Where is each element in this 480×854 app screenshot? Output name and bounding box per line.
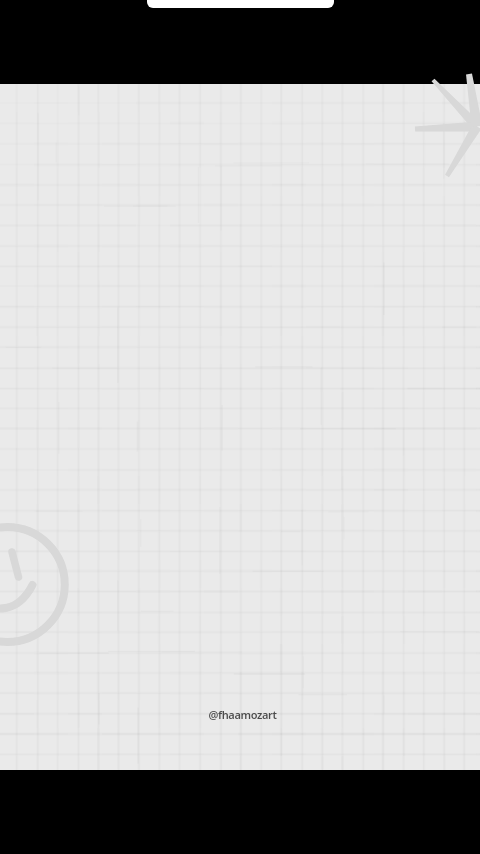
button[interactable]: @fhaamozart [208,707,277,722]
button[interactable]: Grid paper canvas [0,84,480,770]
button[interactable]: Status capsule [147,0,334,8]
